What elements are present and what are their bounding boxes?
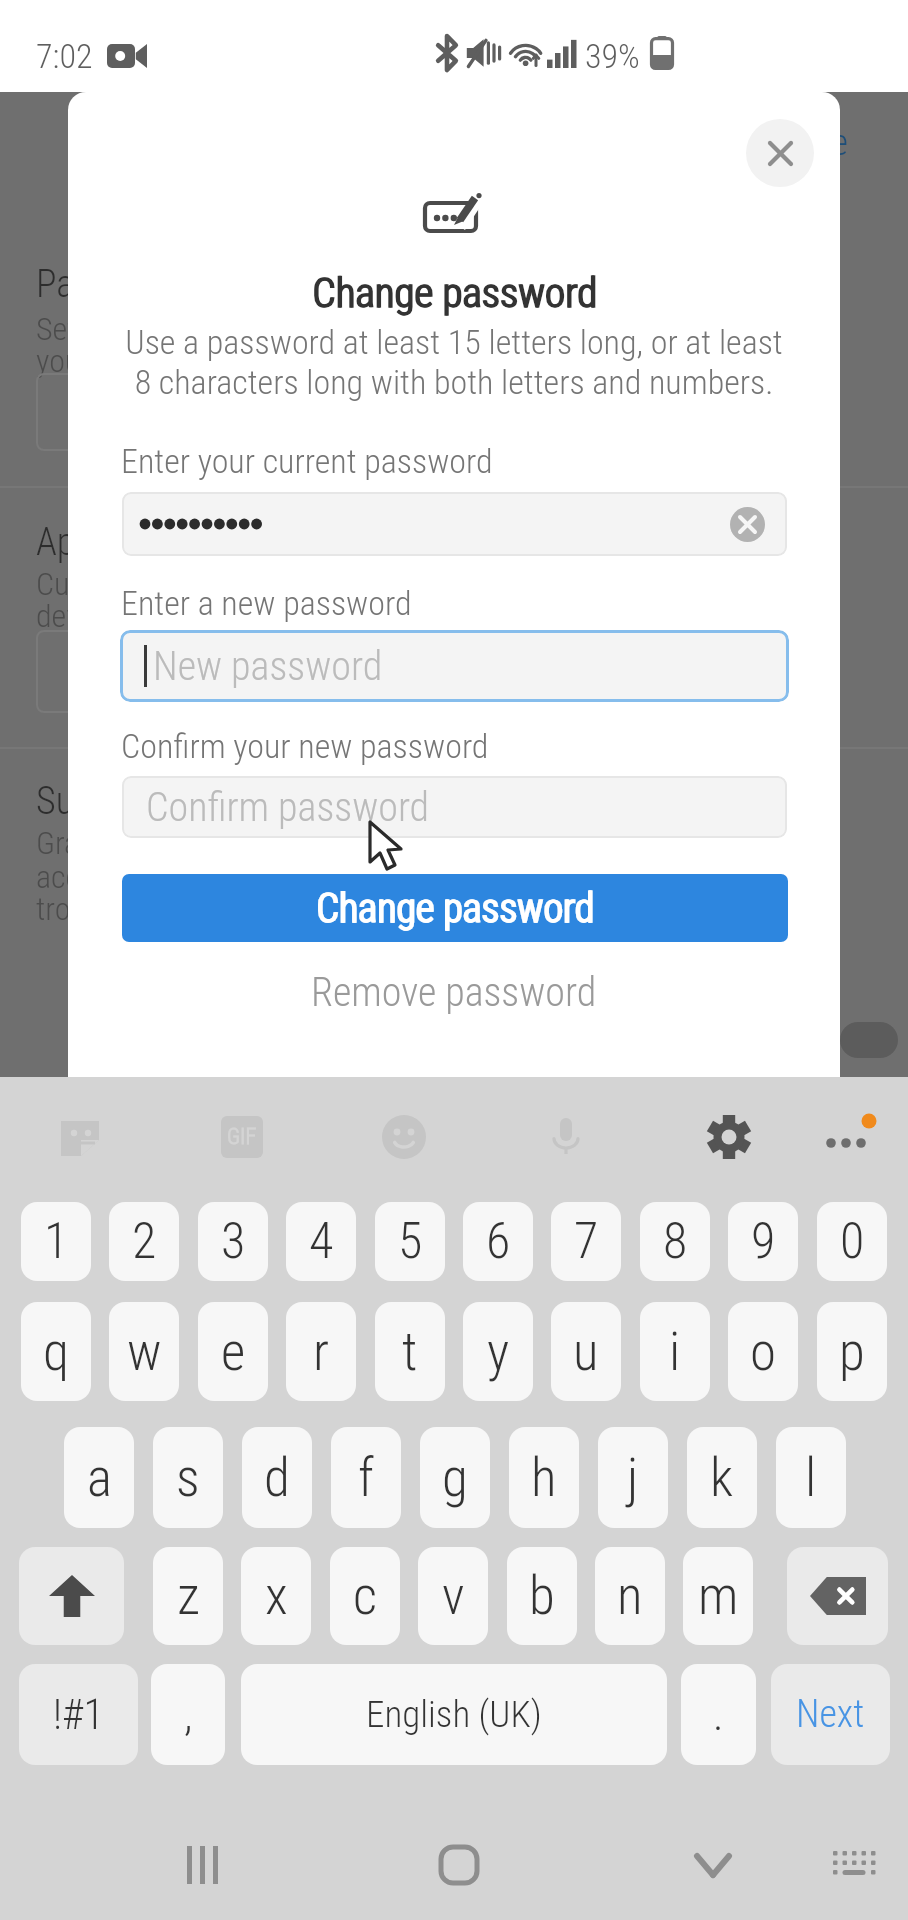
staticText: o	[750, 1321, 777, 1383]
button[interactable]: j	[598, 1427, 668, 1528]
button[interactable]: 4	[286, 1202, 356, 1281]
staticText: GIF	[227, 1124, 257, 1150]
button[interactable]: v	[418, 1547, 488, 1645]
button[interactable]: 8	[640, 1202, 710, 1281]
button[interactable]: Recent apps	[163, 1825, 243, 1905]
button[interactable]: x	[241, 1547, 311, 1645]
button[interactable]: Clear password	[122, 492, 787, 556]
staticText: New password	[153, 643, 383, 690]
button[interactable]: New password	[120, 630, 789, 702]
button[interactable]: u	[551, 1302, 621, 1401]
staticText: k	[710, 1447, 734, 1509]
staticText: y	[487, 1321, 510, 1383]
button[interactable]: e	[198, 1302, 268, 1401]
button[interactable]: Voice input	[531, 1102, 601, 1172]
staticText: access for	[36, 858, 166, 896]
button[interactable]: b	[507, 1547, 577, 1645]
staticText: f	[358, 1447, 374, 1509]
staticText: !#1	[53, 1690, 105, 1739]
staticText: Set a password for	[36, 310, 270, 348]
staticText: troubleshooting	[36, 890, 231, 928]
button[interactable]: c	[330, 1547, 400, 1645]
staticText: Grant remote	[36, 824, 200, 862]
button[interactable]: !#1	[19, 1664, 138, 1765]
button[interactable]: Home	[419, 1825, 499, 1905]
staticText: t	[402, 1321, 418, 1383]
button[interactable]: 3	[198, 1202, 268, 1281]
button[interactable]: Clear password	[730, 507, 765, 542]
button[interactable]: t	[375, 1302, 445, 1401]
staticText: e	[221, 1321, 246, 1383]
staticText: your account	[36, 342, 198, 380]
staticText: 4	[309, 1212, 334, 1271]
staticText: i	[669, 1321, 681, 1383]
button[interactable]: ,	[151, 1664, 225, 1765]
button[interactable]: Next	[771, 1664, 890, 1765]
staticText: u	[573, 1321, 599, 1383]
button[interactable]: Backspace	[787, 1547, 888, 1645]
button[interactable]: l	[776, 1427, 846, 1528]
button[interactable]: n	[595, 1547, 665, 1645]
button[interactable]: d	[242, 1427, 312, 1528]
staticText: Confirm your new password	[121, 726, 489, 766]
staticText: Use a password at least 15 letters long,…	[125, 322, 783, 403]
button[interactable]: g	[420, 1427, 490, 1528]
staticText: z	[177, 1565, 200, 1627]
staticText: x	[265, 1565, 288, 1627]
button[interactable]: English (UK)	[241, 1664, 667, 1765]
button[interactable]: m	[683, 1547, 753, 1645]
staticText: 8	[663, 1212, 688, 1271]
button[interactable]: q	[21, 1302, 91, 1401]
button[interactable]: Stickers	[45, 1102, 115, 1172]
staticText: 2	[132, 1212, 157, 1271]
button[interactable]: z	[153, 1547, 223, 1645]
button[interactable]: s	[153, 1427, 223, 1528]
button[interactable]: i	[640, 1302, 710, 1401]
button[interactable]: .	[681, 1664, 756, 1765]
button[interactable]: r	[286, 1302, 356, 1401]
staticText: 3	[221, 1212, 246, 1271]
staticText: b	[529, 1565, 555, 1627]
button[interactable]: Emoji	[369, 1102, 439, 1172]
button[interactable]: Keyboard settings	[694, 1102, 764, 1172]
button[interactable]: More options	[811, 1102, 881, 1172]
button[interactable]: a	[64, 1427, 134, 1528]
staticText: 39%	[585, 36, 640, 76]
button[interactable]: Hide keyboard	[673, 1825, 753, 1905]
button[interactable]: k	[687, 1427, 757, 1528]
button[interactable]: 0	[817, 1202, 887, 1281]
staticText: d	[264, 1447, 290, 1509]
button[interactable]: Switch keyboard	[814, 1825, 894, 1905]
staticText: a	[87, 1447, 112, 1509]
staticText: ,	[184, 1689, 193, 1741]
staticText: 7:02	[36, 36, 93, 76]
staticText: Remove password	[311, 969, 597, 1016]
button[interactable]: 5	[375, 1202, 445, 1281]
button[interactable]: GIF	[207, 1102, 277, 1172]
button[interactable]: o	[728, 1302, 798, 1401]
button[interactable]: Shift	[19, 1547, 124, 1645]
button[interactable]: 2	[109, 1202, 179, 1281]
staticText: 0	[840, 1212, 865, 1271]
button[interactable]: 7	[551, 1202, 621, 1281]
staticText: Customise your	[36, 565, 230, 603]
button[interactable]: 1	[21, 1202, 91, 1281]
staticText: Change password	[312, 269, 597, 317]
staticText: m	[698, 1565, 739, 1627]
button[interactable]: Remove password	[68, 960, 840, 1024]
button[interactable]: 9	[728, 1202, 798, 1281]
staticText: q	[43, 1321, 69, 1383]
button[interactable]: p	[817, 1302, 887, 1401]
staticText: 9	[751, 1212, 776, 1271]
button[interactable]: 6	[463, 1202, 533, 1281]
button[interactable]: Change password	[122, 874, 788, 942]
button[interactable]: Close	[746, 119, 814, 187]
staticText: n	[617, 1565, 643, 1627]
button[interactable]: f	[331, 1427, 401, 1528]
staticText: .	[713, 1689, 724, 1741]
button[interactable]: y	[463, 1302, 533, 1401]
staticText: Change password	[313, 269, 598, 317]
button[interactable]: Confirm password	[122, 776, 787, 838]
button[interactable]: h	[509, 1427, 579, 1528]
button[interactable]: w	[109, 1302, 179, 1401]
